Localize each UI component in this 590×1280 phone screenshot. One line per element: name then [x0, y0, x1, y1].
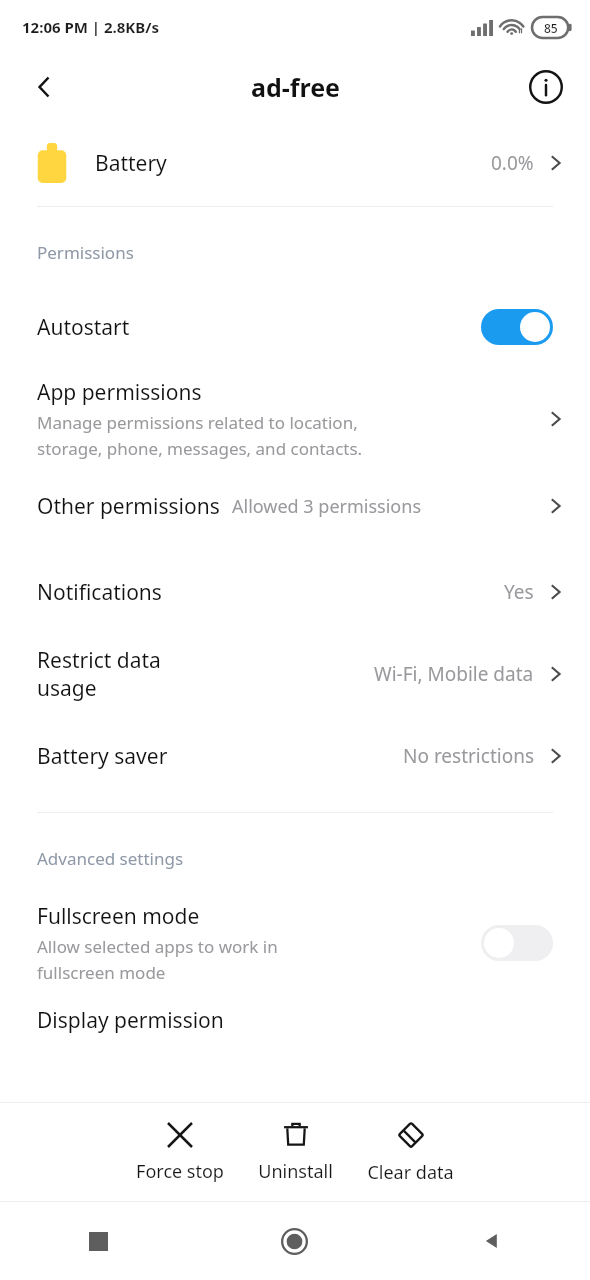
staticText: Allow selected apps to work in fullscree… — [37, 935, 278, 984]
staticText: Clear data — [367, 1160, 454, 1185]
button[interactable]: Autostart — [0, 290, 590, 364]
staticText: Permissions — [37, 241, 134, 264]
staticText: Autostart — [37, 313, 130, 342]
button[interactable]: Uninstall — [250, 1114, 341, 1190]
staticText: Uninstall — [258, 1159, 333, 1184]
staticText: Fullscreen mode — [37, 902, 200, 931]
button[interactable]: On — [481, 309, 553, 345]
staticText: Yes — [504, 579, 534, 605]
staticText: Manage permissions related to location, … — [37, 411, 363, 460]
staticText: 12:06 PM | 2.8KB/s — [22, 17, 160, 37]
button[interactable]: Other permissions — [0, 470, 590, 542]
button[interactable]: Fullscreen mode — [0, 896, 590, 984]
button[interactable]: Restrict data usage — [0, 628, 590, 720]
staticText: App permissions — [37, 378, 202, 407]
button[interactable]: Clear data — [359, 1113, 462, 1191]
button[interactable]: Notifications — [0, 556, 590, 628]
button[interactable]: Recents — [0, 1202, 196, 1280]
staticText: ad-free — [251, 70, 340, 104]
staticText: 0.0% — [491, 150, 534, 176]
staticText: 85 — [544, 20, 558, 36]
button[interactable]: App info — [522, 63, 570, 111]
staticText: Wi-Fi, Mobile data — [374, 661, 534, 687]
staticText: Force stop — [136, 1159, 224, 1184]
staticText: No restrictions — [403, 743, 534, 769]
staticText: Other permissions — [37, 492, 220, 521]
button[interactable]: App permissions — [0, 364, 590, 470]
button[interactable]: Home — [196, 1202, 393, 1280]
staticText: Advanced settings — [37, 847, 184, 870]
button[interactable]: Back — [393, 1202, 590, 1280]
staticText: Battery — [95, 149, 167, 178]
staticText: Battery saver — [37, 742, 168, 771]
button[interactable]: Battery — [0, 120, 590, 206]
staticText: Display permission — [37, 1006, 224, 1035]
button[interactable]: Force stop — [128, 1114, 232, 1190]
button[interactable]: Off — [481, 925, 553, 961]
button[interactable]: Back — [20, 63, 68, 111]
staticText: Allowed 3 permissions — [232, 494, 421, 519]
button[interactable]: Battery saver — [0, 720, 590, 792]
staticText: Notifications — [37, 578, 162, 607]
button[interactable]: Display permission — [0, 1006, 590, 1035]
staticText: Restrict data usage — [37, 646, 237, 702]
